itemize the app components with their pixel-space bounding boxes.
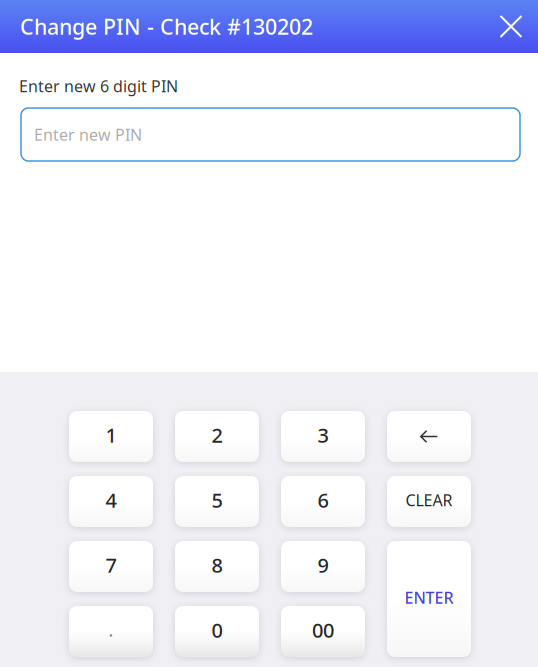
staticText: 9 <box>317 552 328 578</box>
button[interactable] <box>387 411 471 462</box>
staticText: 7 <box>105 552 116 578</box>
staticText: CLEAR <box>405 489 452 511</box>
button[interactable]: 0 <box>175 606 259 657</box>
button[interactable]: Enter new PIN <box>21 108 520 161</box>
staticText: ENTER <box>404 587 453 608</box>
button[interactable]: 9 <box>281 541 365 592</box>
button[interactable]: ENTER <box>387 541 471 657</box>
staticText: 3 <box>317 422 328 448</box>
staticText: 6 <box>317 487 328 513</box>
staticText: 8 <box>211 552 222 578</box>
button[interactable]: 5 <box>175 476 259 527</box>
button[interactable]: . <box>69 606 153 657</box>
button[interactable]: 4 <box>69 476 153 527</box>
staticText: Enter new PIN <box>34 124 142 145</box>
staticText: 1 <box>105 422 116 448</box>
button[interactable]: 8 <box>175 541 259 592</box>
staticText: 2 <box>211 422 222 448</box>
button[interactable]: 7 <box>69 541 153 592</box>
button[interactable]: CLEAR <box>387 476 471 527</box>
button[interactable]: 00 <box>281 606 365 657</box>
staticText: 0 <box>211 617 222 643</box>
staticText: 00 <box>312 617 334 643</box>
button[interactable]: Close <box>499 7 523 45</box>
button[interactable]: 6 <box>281 476 365 527</box>
button[interactable]: 1 <box>69 411 153 462</box>
staticText: . <box>108 618 113 641</box>
staticText: 5 <box>211 487 222 513</box>
button[interactable]: 2 <box>175 411 259 462</box>
staticText: Enter new 6 digit PIN <box>19 75 178 97</box>
staticText: Change PIN - Check #130202 <box>20 12 313 41</box>
button[interactable]: 3 <box>281 411 365 462</box>
staticText: 4 <box>105 487 116 513</box>
